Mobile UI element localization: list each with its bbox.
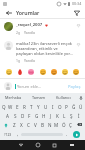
staticText: 00:34 — [72, 1, 82, 6]
staticText: Yorumlar — [16, 9, 40, 16]
staticText: I — [52, 104, 54, 110]
button[interactable]: Z — [11, 120, 18, 129]
button[interactable]: O — [56, 102, 63, 111]
button[interactable]: Ö — [60, 120, 67, 129]
button[interactable]: E — [14, 102, 21, 111]
button[interactable]: Yorum ekle... — [15, 84, 66, 89]
button[interactable]: Emoji — [16, 68, 24, 76]
button[interactable]: Emoji — [61, 68, 69, 76]
button[interactable]: P — [63, 102, 70, 111]
staticText: P — [65, 104, 68, 110]
button[interactable]: B — [39, 120, 46, 129]
staticText: M — [54, 122, 59, 128]
staticText: X — [20, 122, 23, 128]
button[interactable]: I — [49, 102, 56, 111]
button[interactable]: Voice input — [76, 93, 85, 102]
button[interactable]: H — [40, 111, 47, 120]
button[interactable]: Space — [21, 131, 63, 137]
staticText: ?123 — [4, 132, 12, 137]
button[interactable]: V — [32, 120, 39, 129]
staticText: B — [41, 122, 44, 128]
staticText: Yorum ekle... — [17, 84, 42, 89]
staticText: . — [66, 131, 68, 137]
staticText: E — [16, 104, 19, 110]
button[interactable]: R — [21, 102, 28, 111]
button[interactable]: Back — [4, 8, 13, 17]
staticText: D — [21, 113, 25, 119]
staticText: Tamam — [32, 95, 46, 100]
staticText: 2g — [16, 30, 21, 35]
button[interactable]: Emoji — [27, 68, 35, 76]
staticText: J — [50, 113, 52, 119]
button[interactable]: Like — [75, 22, 81, 28]
button[interactable]: Comma — [14, 129, 21, 139]
staticText: Y — [37, 104, 40, 110]
staticText: V — [34, 122, 37, 128]
button[interactable]: G — [33, 111, 40, 120]
staticText: Kullanıcı — [56, 95, 71, 100]
staticText: Ç — [69, 122, 72, 128]
staticText: malika123in ilanıseverli ençok kazandıra… — [16, 41, 75, 56]
button[interactable]: Ü — [77, 102, 84, 111]
button[interactable]: D — [19, 111, 26, 120]
staticText: 1g — [16, 58, 21, 63]
button[interactable]: Recents — [46, 140, 63, 150]
button[interactable]: Emoji — [50, 68, 58, 76]
button[interactable]: Y — [35, 102, 42, 111]
button[interactable]: C — [25, 120, 32, 129]
button[interactable]: İ — [75, 111, 82, 120]
staticText: _raquel_2007 — [16, 22, 43, 28]
button[interactable]: Merhaba — [0, 93, 26, 102]
staticText: İ — [78, 113, 80, 119]
button[interactable]: ?123 — [2, 129, 14, 139]
button[interactable]: W — [7, 102, 14, 111]
staticText: C — [27, 122, 30, 128]
staticText: R — [23, 104, 26, 110]
staticText: L — [63, 113, 66, 119]
staticText: Ü — [79, 104, 83, 110]
button[interactable]: A — [3, 111, 11, 120]
button[interactable]: X — [18, 120, 25, 129]
button[interactable]: N — [46, 120, 53, 129]
button[interactable]: K — [54, 111, 61, 120]
button[interactable]: Paylaş — [68, 84, 81, 89]
button[interactable]: J — [47, 111, 54, 120]
button[interactable]: Back — [12, 140, 29, 150]
button[interactable]: Ç — [67, 120, 74, 129]
button[interactable]: Hide keyboard — [63, 140, 80, 150]
staticText: S — [14, 113, 17, 119]
button[interactable]: Period — [63, 129, 70, 139]
button[interactable]: _raquel_2007 — [0, 19, 85, 38]
button[interactable]: Like — [75, 41, 81, 47]
button[interactable]: M — [53, 120, 60, 129]
button[interactable]: Shift — [1, 120, 11, 129]
button[interactable]: malika123in ilanıseverli ençok kazandıra… — [0, 38, 85, 66]
staticText: Ö — [62, 122, 66, 128]
button[interactable]: Ğ — [70, 102, 77, 111]
staticText: W — [8, 104, 13, 110]
button[interactable]: Emoji — [39, 68, 47, 76]
button[interactable]: Yanıtla — [24, 58, 35, 63]
staticText: A — [6, 113, 9, 119]
button[interactable]: Kullanıcı — [51, 93, 76, 102]
button[interactable]: Tamam — [26, 93, 51, 102]
staticText: O — [58, 104, 62, 110]
button[interactable]: S — [11, 111, 19, 120]
button[interactable]: Emoji — [72, 68, 80, 76]
button[interactable]: Enter — [70, 129, 83, 139]
button[interactable]: Emoji — [5, 68, 13, 76]
button[interactable]: U — [42, 102, 49, 111]
button[interactable]: Backspace — [74, 120, 84, 129]
button[interactable]: T — [28, 102, 35, 111]
button[interactable]: Yanıtla — [24, 30, 35, 35]
button[interactable]: L — [61, 111, 68, 120]
button[interactable]: Ş — [68, 111, 75, 120]
staticText: H — [42, 113, 46, 119]
staticText: T — [30, 104, 33, 110]
button[interactable]: F — [26, 111, 33, 120]
staticText: F — [28, 113, 31, 119]
button[interactable]: Q — [1, 102, 7, 111]
button[interactable]: Home — [29, 140, 46, 150]
staticText: N — [48, 122, 52, 128]
button[interactable]: Send — [72, 8, 81, 17]
